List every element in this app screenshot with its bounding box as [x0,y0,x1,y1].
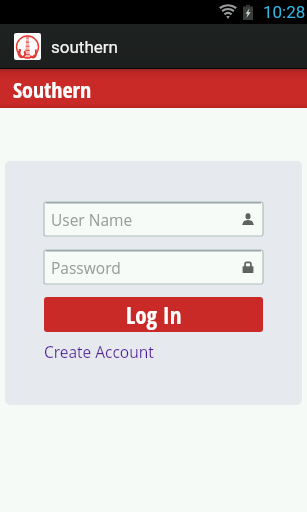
staticText: Password [51,257,121,278]
button[interactable]: User name [44,202,263,236]
staticText: User Name [51,209,133,230]
staticText: Southern [13,74,92,104]
staticText: southern [51,37,118,57]
staticText: Log In [126,299,182,330]
button[interactable]: Password [44,250,263,284]
button[interactable]: Create Account [44,339,154,364]
staticText: 10:28 [263,2,306,22]
button[interactable]: Log In [44,297,263,332]
staticText: Create Account [44,341,154,362]
